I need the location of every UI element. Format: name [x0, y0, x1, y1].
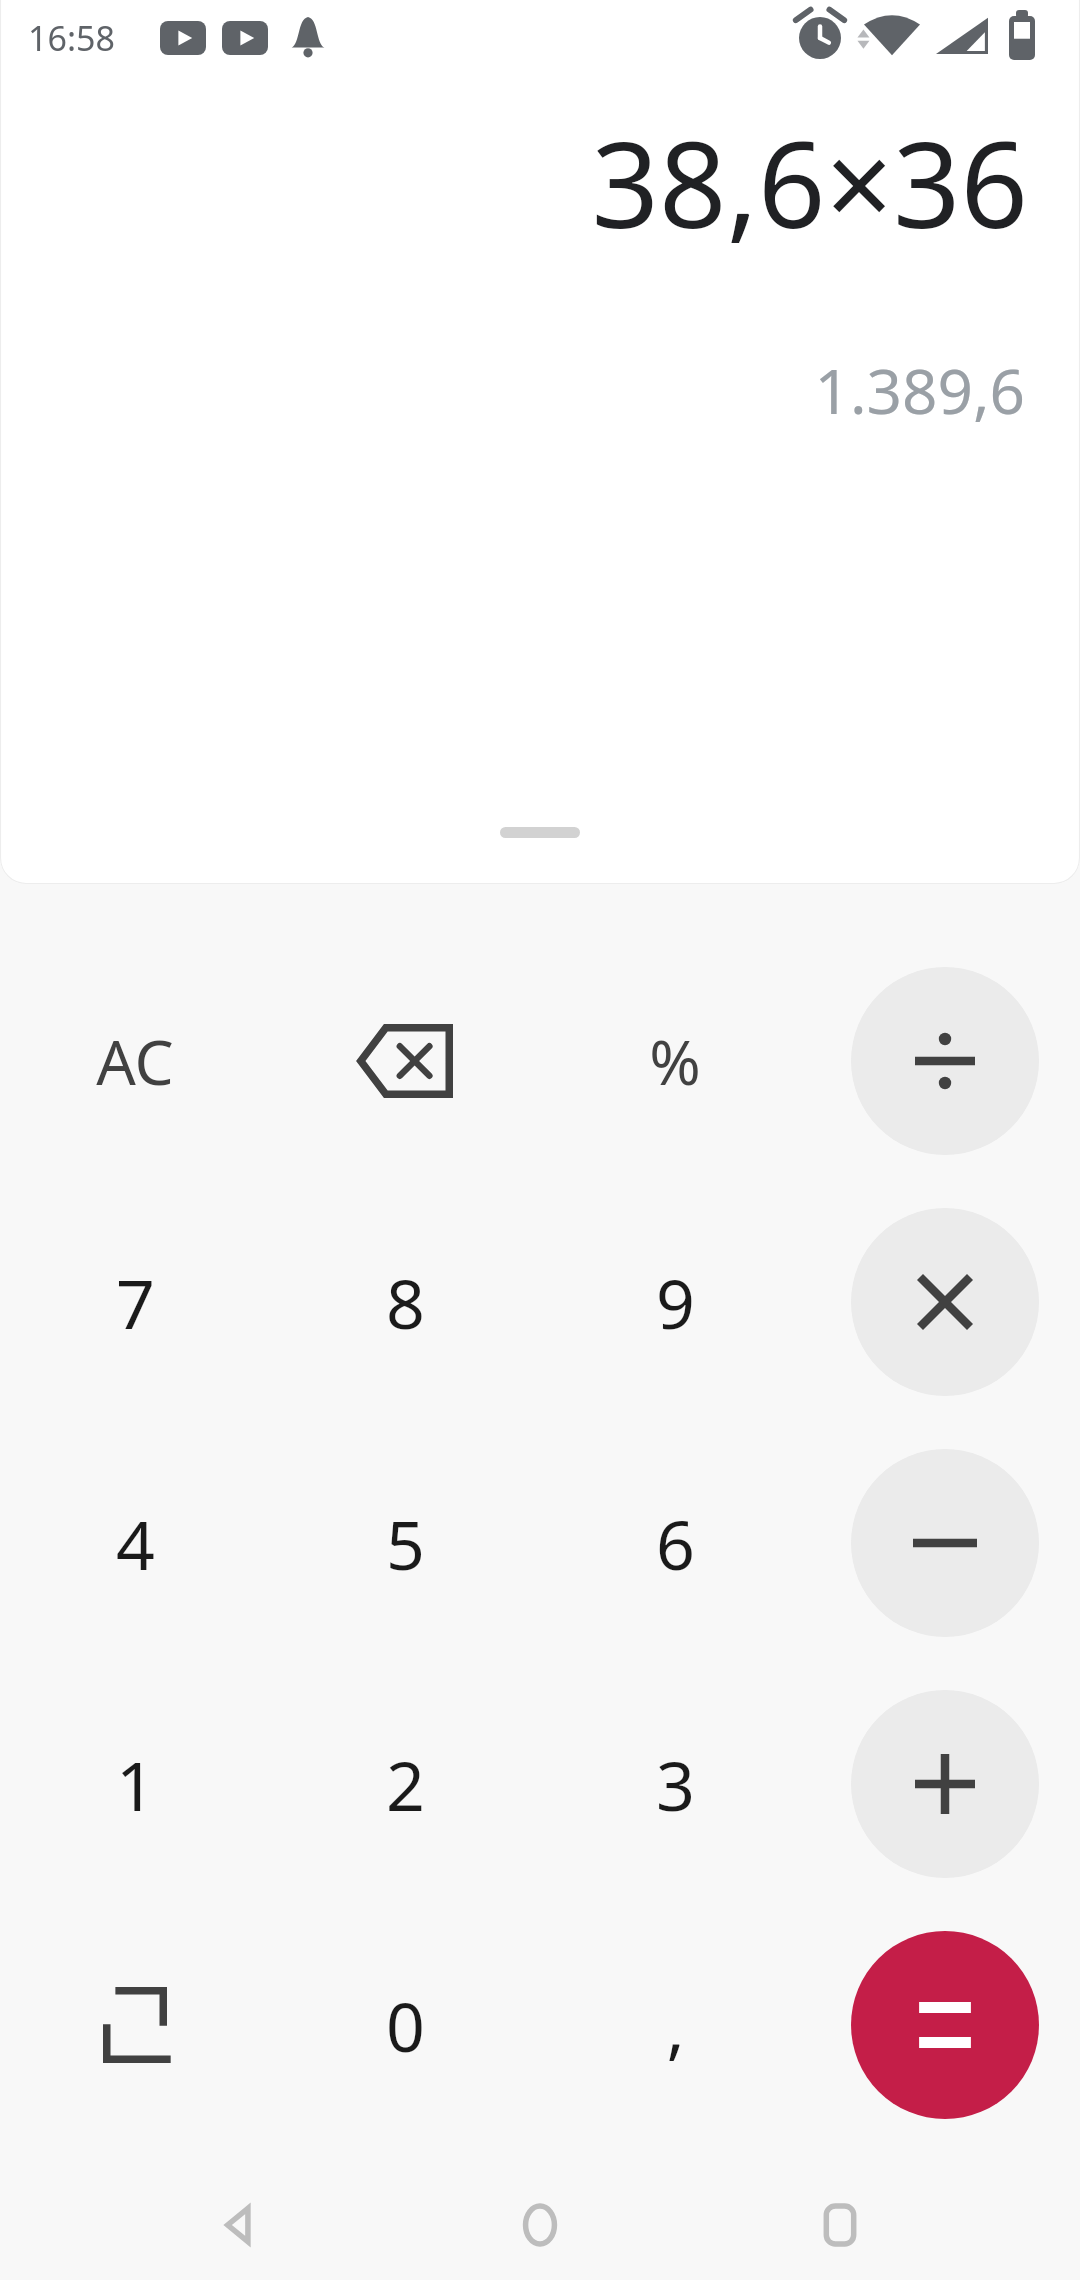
- staticText: 9: [656, 1256, 695, 1349]
- button[interactable]: 6: [581, 1449, 769, 1637]
- button[interactable]: Multiply: [851, 1208, 1039, 1396]
- button[interactable]: Recent apps: [780, 2170, 900, 2280]
- button[interactable]: 5: [311, 1449, 499, 1637]
- button[interactable]: Equals: [851, 1931, 1039, 2119]
- staticText: 5: [386, 1497, 425, 1590]
- button[interactable]: 1: [41, 1690, 229, 1878]
- button[interactable]: Backspace: [311, 967, 499, 1155]
- staticText: 4: [116, 1497, 155, 1590]
- staticText: 8: [386, 1256, 425, 1349]
- button[interactable]: Home: [480, 2170, 600, 2280]
- staticText: 0: [386, 1979, 425, 2072]
- button[interactable]: %: [581, 967, 769, 1155]
- button[interactable]: 8: [311, 1208, 499, 1396]
- button[interactable]: 7: [41, 1208, 229, 1396]
- button[interactable]: Expand: [41, 1931, 229, 2119]
- button[interactable]: Divide: [851, 967, 1039, 1155]
- button[interactable]: Add: [851, 1690, 1039, 1878]
- staticText: 2: [386, 1738, 425, 1831]
- staticText: 3: [656, 1738, 695, 1831]
- button[interactable]: 2: [311, 1690, 499, 1878]
- staticText: 1.389,6: [814, 348, 1025, 432]
- staticText: 38,6×36: [591, 102, 1028, 263]
- button[interactable]: 3: [581, 1690, 769, 1878]
- staticText: 7: [116, 1256, 155, 1349]
- button[interactable]: 0: [311, 1931, 499, 2119]
- button[interactable]: Subtract: [851, 1449, 1039, 1637]
- button[interactable]: AC: [41, 967, 229, 1155]
- button[interactable]: Back: [180, 2170, 300, 2280]
- button[interactable]: 4: [41, 1449, 229, 1637]
- staticText: 6: [656, 1497, 695, 1590]
- button[interactable]: 9: [581, 1208, 769, 1396]
- staticText: 16:58: [28, 15, 115, 61]
- staticText: ,: [666, 1979, 685, 2072]
- staticText: %: [649, 1019, 701, 1103]
- staticText: AC: [96, 1019, 174, 1103]
- staticText: 1: [116, 1738, 155, 1831]
- button[interactable]: ,: [581, 1931, 769, 2119]
